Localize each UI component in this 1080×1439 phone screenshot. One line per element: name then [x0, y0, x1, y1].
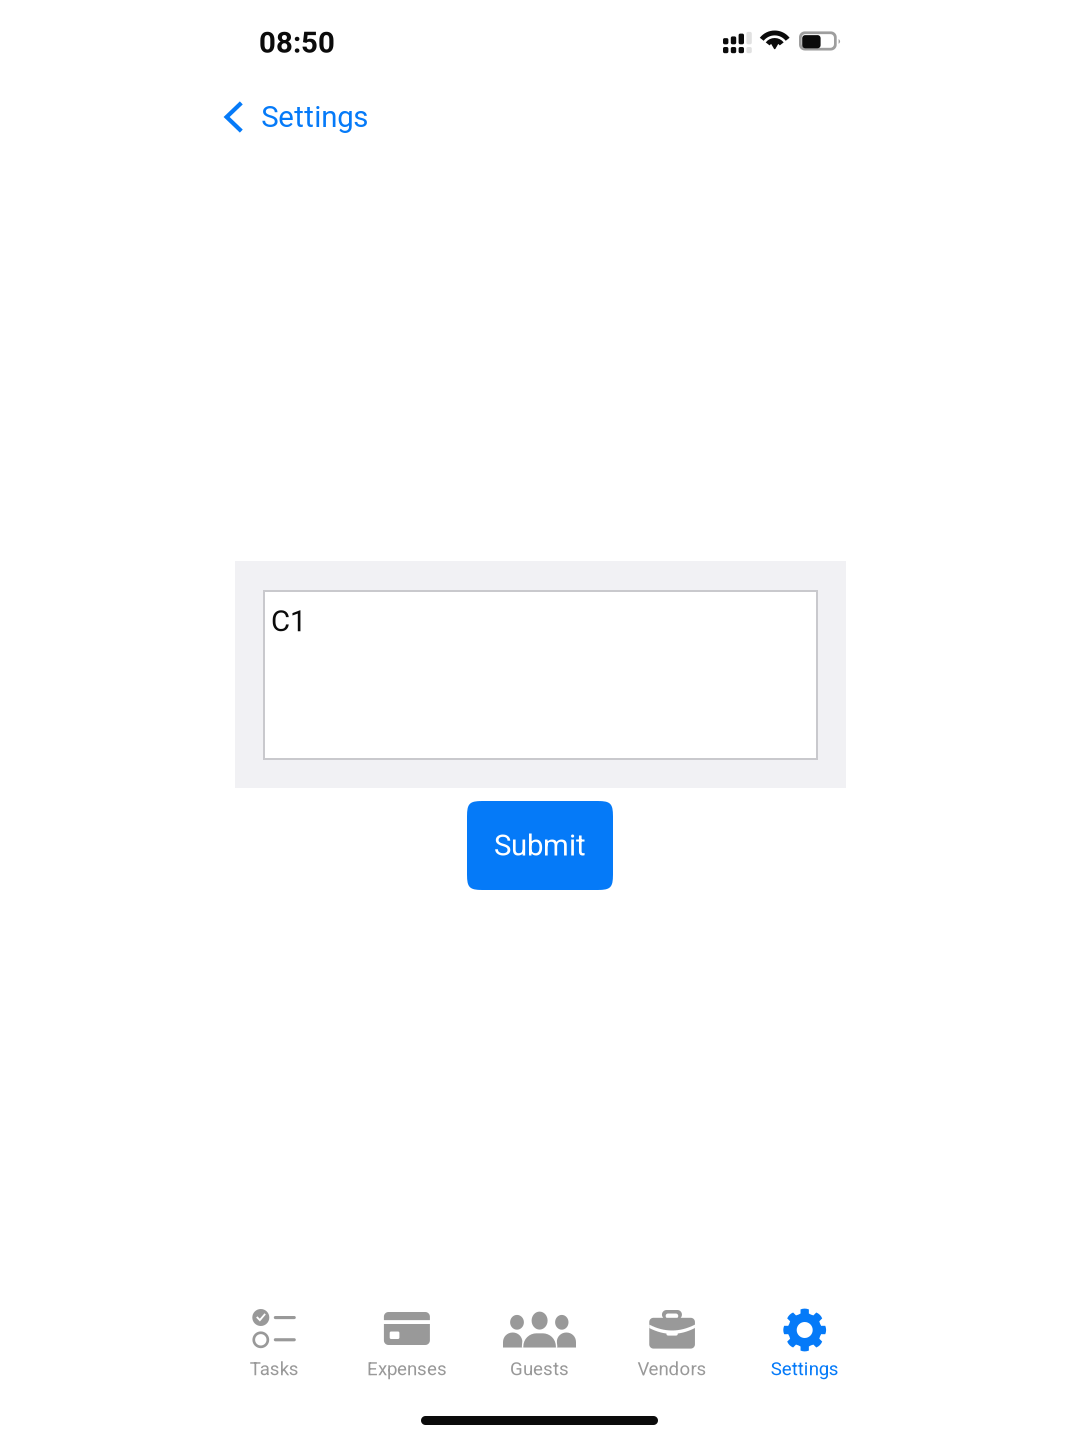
staticText: Settings — [771, 1358, 839, 1380]
staticText: Guests — [510, 1358, 569, 1380]
staticText: Vendors — [638, 1358, 707, 1380]
button[interactable]: Settings — [224, 95, 394, 139]
staticText: Submit — [494, 828, 586, 863]
button[interactable]: Vendors — [606, 1301, 738, 1391]
button[interactable]: Settings — [738, 1301, 871, 1391]
button[interactable]: Tasks — [208, 1301, 341, 1391]
button[interactable]: Guests — [473, 1301, 606, 1391]
staticText: Settings — [261, 100, 368, 134]
staticText: 08:50 — [259, 25, 335, 60]
button[interactable]: Expenses — [341, 1301, 473, 1391]
button[interactable]: Text field — [263, 590, 818, 760]
staticText: Expenses — [367, 1358, 447, 1380]
staticText: Tasks — [250, 1358, 299, 1380]
button[interactable]: Submit — [467, 801, 613, 890]
staticText: C1 — [271, 604, 306, 638]
